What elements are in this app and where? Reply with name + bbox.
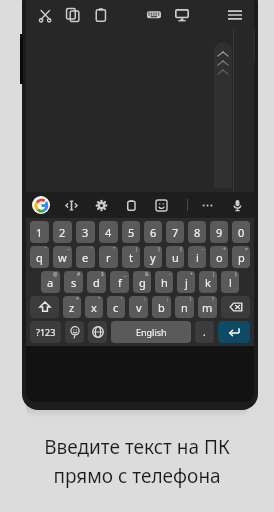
button[interactable]: Settings bbox=[92, 196, 110, 214]
staticText: 3 bbox=[82, 225, 89, 240]
staticText: z bbox=[69, 300, 75, 315]
staticText: 4 bbox=[105, 225, 112, 240]
staticText: ~ bbox=[67, 246, 70, 253]
staticText: r bbox=[106, 250, 111, 265]
staticText: e bbox=[82, 250, 89, 265]
button[interactable]: Scroll bbox=[214, 42, 232, 188]
button[interactable]: v bbox=[129, 296, 148, 318]
button[interactable]: x bbox=[85, 296, 103, 318]
button[interactable]: 1 bbox=[30, 221, 49, 243]
staticText: 9 bbox=[216, 225, 223, 240]
button[interactable]: Keyboard bbox=[143, 4, 165, 26]
button[interactable]: Change language bbox=[88, 321, 107, 343]
staticText: 1 bbox=[36, 225, 43, 240]
button[interactable]: ?123 bbox=[30, 321, 61, 343]
staticText: c bbox=[113, 300, 119, 315]
staticText: b bbox=[158, 300, 165, 315]
staticText: n bbox=[181, 300, 188, 315]
button[interactable]: a bbox=[41, 271, 60, 293]
button[interactable]: 4 bbox=[99, 221, 118, 243]
button[interactable]: 6 bbox=[144, 221, 162, 243]
button[interactable]: Cursor bbox=[62, 196, 80, 214]
staticText: { bbox=[180, 246, 182, 253]
button[interactable]: Voice input bbox=[228, 196, 246, 214]
button[interactable]: Menu bbox=[224, 4, 246, 26]
button[interactable]: 0 bbox=[232, 221, 250, 243]
staticText: j bbox=[185, 275, 188, 290]
button[interactable]: i bbox=[188, 246, 206, 268]
button[interactable]: t bbox=[122, 246, 140, 268]
button[interactable]: More bbox=[198, 196, 216, 214]
button[interactable]: Shift bbox=[30, 296, 59, 318]
button[interactable]: p bbox=[232, 246, 250, 268]
staticText: @ bbox=[53, 271, 58, 278]
button[interactable]: . bbox=[195, 321, 214, 343]
button[interactable]: Emoji bbox=[65, 321, 84, 343]
button[interactable]: Paste bbox=[90, 4, 112, 26]
button[interactable]: u bbox=[166, 246, 184, 268]
button[interactable]: j bbox=[177, 271, 195, 293]
staticText: y bbox=[150, 250, 156, 265]
button[interactable]: k bbox=[199, 271, 217, 293]
button[interactable]: 5 bbox=[122, 221, 140, 243]
staticText: u bbox=[172, 250, 179, 265]
staticText: * bbox=[76, 296, 79, 303]
button[interactable]: m bbox=[198, 296, 217, 318]
button[interactable]: f bbox=[110, 271, 129, 293]
staticText: v bbox=[136, 300, 142, 315]
staticText: 8 bbox=[194, 225, 201, 240]
button[interactable]: Backspace bbox=[221, 296, 250, 318]
staticText: d bbox=[93, 275, 100, 290]
button[interactable]: l bbox=[221, 271, 239, 293]
button[interactable]: g bbox=[133, 271, 151, 293]
staticText: p bbox=[238, 250, 245, 265]
staticText: - bbox=[169, 271, 171, 278]
button[interactable]: 7 bbox=[166, 221, 184, 243]
staticText: o bbox=[216, 250, 223, 265]
button[interactable]: y bbox=[144, 246, 162, 268]
button[interactable]: o bbox=[210, 246, 228, 268]
button[interactable]: d bbox=[87, 271, 106, 293]
button[interactable]: Enter bbox=[218, 321, 250, 343]
staticText: ?123 bbox=[36, 326, 56, 338]
staticText: 5 bbox=[128, 225, 135, 240]
button[interactable]: Stickers bbox=[152, 196, 170, 214]
button[interactable]: 3 bbox=[76, 221, 95, 243]
button[interactable]: w bbox=[53, 246, 72, 268]
button[interactable]: r bbox=[99, 246, 118, 268]
staticText: ? bbox=[212, 296, 215, 303]
button[interactable]: 9 bbox=[210, 221, 228, 243]
staticText: : bbox=[144, 296, 146, 303]
staticText: s bbox=[71, 275, 77, 290]
staticText: ! bbox=[190, 296, 192, 303]
staticText: " bbox=[98, 296, 101, 303]
button[interactable]: Monitor bbox=[171, 4, 193, 26]
staticText: прямо с телефона bbox=[53, 463, 221, 489]
button[interactable]: b bbox=[152, 296, 171, 318]
staticText: 2 bbox=[59, 225, 66, 240]
staticText: $ bbox=[101, 271, 104, 278]
button[interactable]: s bbox=[64, 271, 83, 293]
button[interactable]: English bbox=[111, 321, 191, 343]
staticText: k bbox=[205, 275, 211, 290]
button[interactable]: 8 bbox=[188, 221, 206, 243]
button[interactable]: q bbox=[30, 246, 49, 268]
button[interactable]: z bbox=[63, 296, 81, 318]
button[interactable]: n bbox=[175, 296, 194, 318]
button[interactable]: h bbox=[155, 271, 173, 293]
button[interactable]: e bbox=[76, 246, 95, 268]
staticText: t bbox=[129, 250, 133, 265]
staticText: 6 bbox=[150, 225, 157, 240]
button[interactable]: Cut bbox=[34, 4, 56, 26]
staticText: " bbox=[113, 246, 116, 253]
button[interactable]: Google bbox=[32, 196, 50, 214]
staticText: l bbox=[229, 275, 232, 290]
staticText: m bbox=[202, 300, 213, 315]
staticText: English bbox=[136, 326, 167, 338]
button[interactable]: c bbox=[107, 296, 125, 318]
button[interactable]: Copy bbox=[62, 4, 84, 26]
button[interactable]: Clipboard bbox=[122, 196, 140, 214]
button[interactable]: 2 bbox=[53, 221, 72, 243]
staticText: + bbox=[223, 246, 226, 253]
staticText: # bbox=[77, 271, 81, 278]
